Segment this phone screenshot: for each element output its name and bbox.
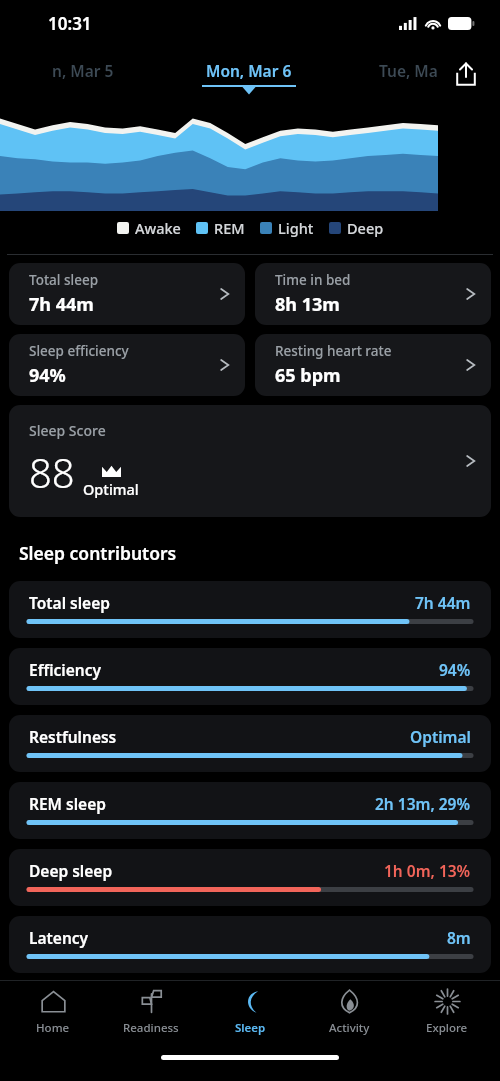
button[interactable]: Total sleep	[9, 263, 245, 325]
button[interactable]: Restfulness	[9, 715, 491, 772]
staticText: Tue, Ma	[379, 60, 438, 81]
staticText: n, Mar 5	[52, 60, 114, 81]
staticText: 8m	[447, 927, 471, 948]
staticText: 8h 13m	[275, 292, 340, 317]
staticText: Sleep	[235, 1020, 266, 1036]
button[interactable]: Deep sleep	[9, 849, 491, 906]
staticText: REM sleep	[29, 793, 106, 814]
button[interactable]: Resting heart rate	[255, 334, 491, 396]
button[interactable]: REM sleep	[9, 782, 491, 839]
staticText: REM	[214, 218, 245, 238]
staticText: Awake	[135, 218, 181, 238]
button[interactable]: Readiness	[105, 988, 197, 1036]
button[interactable]: Sleep Score	[9, 405, 491, 517]
staticText: Optimal	[83, 479, 139, 499]
staticText: Deep	[347, 218, 384, 238]
staticText: 65 bpm	[275, 363, 341, 388]
staticText: Home	[36, 1020, 70, 1036]
button[interactable]: Explore	[401, 988, 493, 1036]
button[interactable]: Time in bed	[255, 263, 491, 325]
staticText: Optimal	[410, 726, 471, 747]
button[interactable]: Latency	[9, 916, 491, 973]
staticText: Sleep Score	[29, 421, 106, 440]
staticText: Total sleep	[29, 271, 99, 289]
button[interactable]: Activity	[303, 988, 395, 1036]
staticText: Efficiency	[29, 659, 101, 680]
staticText: 94%	[439, 659, 471, 680]
staticText: 94%	[29, 363, 66, 388]
staticText: Activity	[329, 1020, 370, 1036]
staticText: Readiness	[123, 1020, 179, 1036]
button[interactable]: Efficiency	[9, 648, 491, 705]
button[interactable]: Total sleep	[9, 581, 491, 638]
button[interactable]: Sleep	[204, 988, 296, 1036]
button[interactable]: Home	[7, 988, 99, 1036]
staticText: 88	[29, 445, 75, 499]
staticText: Restfulness	[29, 726, 117, 747]
staticText: 10:31	[48, 12, 92, 35]
staticText: Deep sleep	[29, 860, 113, 881]
staticText: 7h 44m	[415, 592, 471, 613]
staticText: Latency	[29, 927, 89, 948]
staticText: Resting heart rate	[275, 342, 392, 360]
staticText: 2h 13m, 29%	[375, 793, 471, 814]
staticText: Light	[278, 218, 314, 238]
staticText: Total sleep	[29, 592, 110, 613]
staticText: Sleep contributors	[19, 541, 177, 565]
staticText: Sleep efficiency	[29, 342, 129, 360]
staticText: 1h 0m, 13%	[384, 860, 471, 881]
staticText: Explore	[426, 1020, 468, 1036]
staticText: Time in bed	[275, 271, 351, 289]
staticText: Mon, Mar 6	[206, 60, 292, 81]
button[interactable]: Share	[444, 52, 488, 96]
staticText: 7h 44m	[29, 292, 94, 317]
button[interactable]: Sleep efficiency	[9, 334, 245, 396]
